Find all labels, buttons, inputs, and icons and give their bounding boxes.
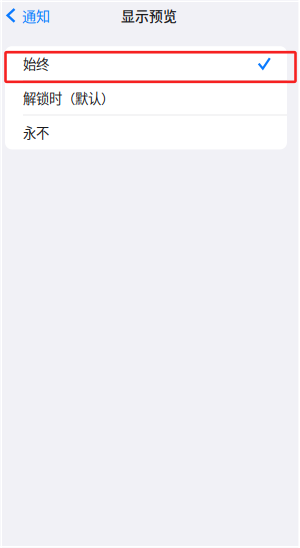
button[interactable]: 始终 [5, 46, 287, 81]
staticText: 解锁时（默认） [23, 88, 114, 107]
staticText: 始终 [23, 54, 49, 73]
button[interactable]: 解锁时（默认） [5, 81, 287, 115]
button[interactable]: 通知 [0, 0, 69, 30]
staticText: 永不 [23, 122, 49, 142]
button[interactable]: 永不 [5, 115, 287, 149]
staticText: 显示预览 [121, 5, 177, 25]
staticText: 通知 [22, 5, 50, 26]
